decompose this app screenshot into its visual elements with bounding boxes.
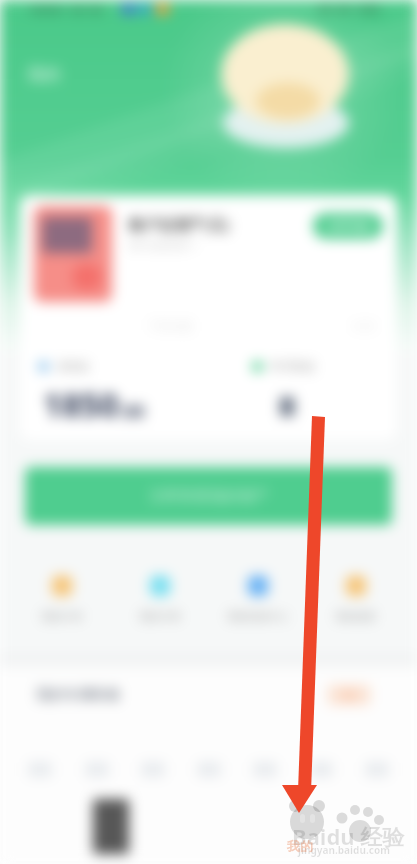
staticText: 我的	[27, 64, 61, 85]
staticText: 立即充值	[326, 219, 370, 233]
button[interactable]: 我的设置	[307, 563, 405, 629]
button[interactable]: 我的订单	[12, 563, 111, 629]
button[interactable]: 立即充值	[313, 213, 383, 239]
staticText: 立即查看我的资产	[149, 487, 269, 506]
button[interactable]	[309, 762, 333, 777]
staticText: .00	[119, 399, 145, 424]
staticText: 账户总资产(元)	[129, 214, 230, 234]
staticText: 我的	[287, 838, 313, 854]
staticText: 我的专属客服	[36, 686, 120, 704]
staticText: 总收益	[56, 359, 89, 373]
staticText: jingyan.baidu.com	[298, 843, 390, 857]
button[interactable]: 我的消息中心	[209, 563, 307, 629]
staticText: Baidu 经验	[292, 821, 405, 851]
button[interactable]: 立即查看我的资产	[25, 467, 392, 525]
staticText: 我的消息中心	[228, 610, 288, 623]
staticText: 1850	[43, 382, 119, 427]
staticText: 累计收益说明 >	[129, 238, 198, 252]
staticText: 新	[344, 689, 354, 702]
button[interactable]: 我的卡券	[111, 563, 209, 629]
